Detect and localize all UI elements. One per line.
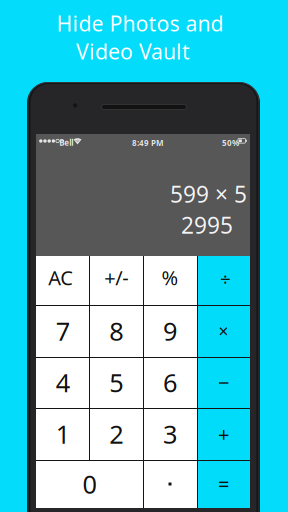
staticText: Hide Photos and: [56, 9, 223, 37]
button[interactable]: ×: [197, 305, 250, 357]
staticText: +/-: [104, 264, 128, 291]
staticText: 4: [56, 366, 70, 399]
button[interactable]: ÷: [197, 256, 250, 305]
staticText: +: [218, 421, 229, 447]
staticText: 3: [163, 417, 177, 451]
button[interactable]: 6: [143, 357, 197, 408]
staticText: Bell: [59, 137, 73, 148]
button[interactable]: 8: [89, 305, 143, 357]
staticText: ×: [218, 319, 228, 342]
staticText: ÷: [220, 266, 231, 291]
button[interactable]: 4: [36, 357, 89, 408]
button[interactable]: %: [143, 256, 197, 305]
staticText: 2: [109, 417, 123, 451]
button[interactable]: [143, 460, 197, 508]
button[interactable]: +: [197, 408, 250, 460]
button[interactable]: 7: [36, 305, 89, 357]
staticText: 0: [82, 467, 96, 501]
button[interactable]: 2: [89, 408, 143, 460]
button[interactable]: 5: [89, 357, 143, 408]
staticText: 2995: [181, 210, 233, 240]
staticText: 8: [109, 314, 123, 348]
staticText: 7: [56, 314, 70, 348]
button[interactable]: 3: [143, 408, 197, 460]
button[interactable]: −: [197, 357, 250, 408]
staticText: %: [161, 264, 178, 291]
staticText: 8:49 PM: [132, 138, 164, 148]
button[interactable]: 9: [143, 305, 197, 357]
button[interactable]: 1: [36, 408, 89, 460]
staticText: 9: [163, 314, 177, 348]
staticText: AC: [48, 264, 73, 291]
staticText: 5: [109, 366, 123, 399]
staticText: 50%: [222, 138, 239, 148]
staticText: 1: [56, 417, 70, 451]
staticText: 6: [163, 366, 177, 399]
button[interactable]: AC: [36, 256, 89, 305]
staticText: =: [218, 471, 229, 497]
staticText: 599 × 5: [170, 179, 247, 209]
staticText: Video Vault: [76, 37, 190, 65]
button[interactable]: +/-: [89, 256, 143, 305]
button[interactable]: =: [197, 460, 250, 508]
button[interactable]: 0: [36, 460, 143, 508]
staticText: −: [218, 369, 229, 396]
